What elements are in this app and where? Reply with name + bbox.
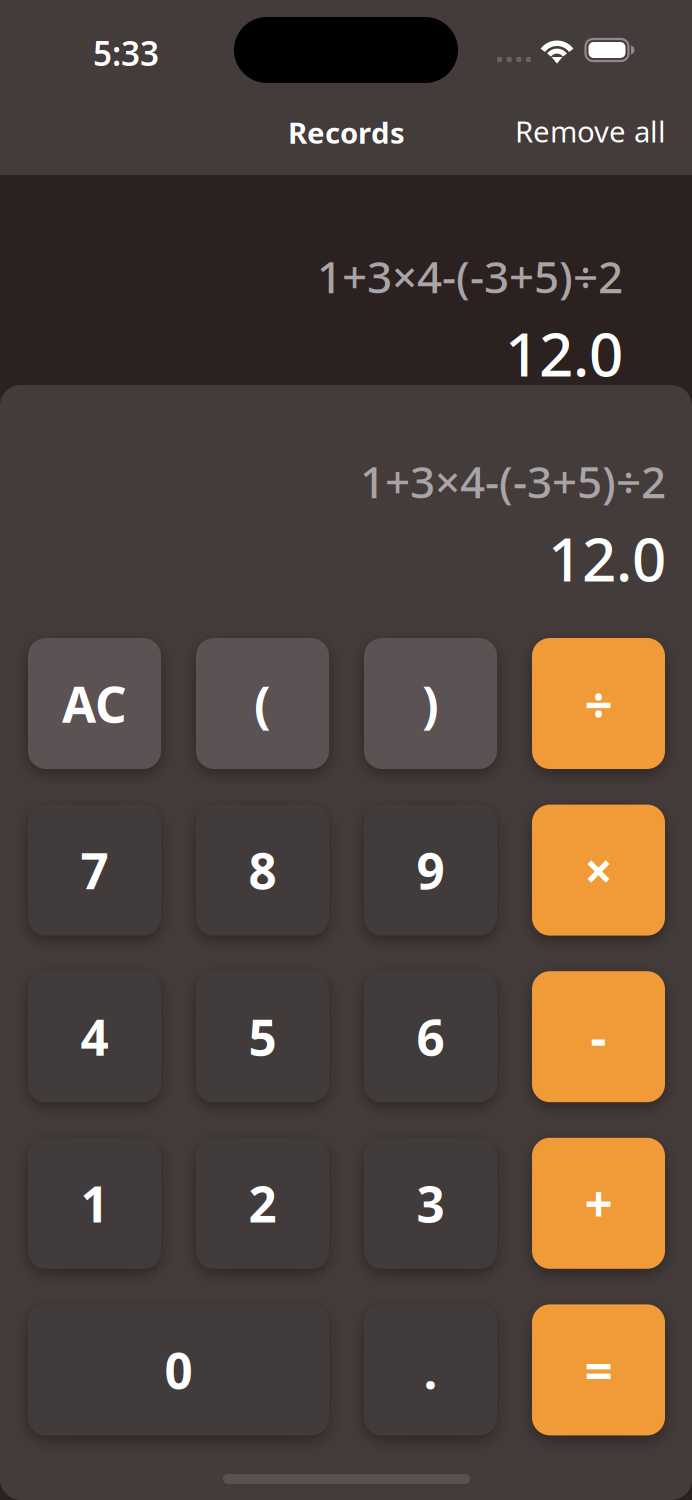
button[interactable]: 8 [196, 805, 329, 936]
staticText: Records [288, 113, 405, 152]
staticText: 0 [164, 1337, 192, 1403]
staticText: × [584, 837, 612, 903]
staticText: 5 [248, 1004, 276, 1069]
staticText: = [584, 1337, 612, 1403]
staticText: 6 [416, 1004, 444, 1069]
staticText: 1 [80, 1170, 108, 1236]
staticText: AC [62, 671, 127, 736]
button[interactable]: AC [28, 638, 161, 769]
button[interactable]: 1+3×4-(-3+5)÷2 [0, 175, 623, 423]
staticText: 9 [416, 837, 444, 903]
button[interactable]: 7 [28, 805, 161, 936]
staticText: 2 [248, 1170, 276, 1236]
staticText: ( [254, 671, 271, 736]
button[interactable]: + [532, 1138, 665, 1269]
button[interactable]: ( [196, 638, 329, 769]
button[interactable]: = [532, 1304, 665, 1435]
staticText: 1+3×4-(-3+5)÷2 [317, 247, 623, 305]
staticText: 1+3×4-(-3+5)÷2 [360, 452, 666, 510]
staticText: - [590, 1004, 606, 1069]
staticText: ) [422, 671, 439, 736]
button[interactable]: ) [364, 638, 497, 769]
staticText: ÷ [584, 671, 612, 736]
staticText: 8 [248, 837, 276, 903]
staticText: 12.0 [505, 313, 623, 393]
button[interactable]: 6 [364, 971, 497, 1102]
staticText: + [584, 1170, 612, 1236]
staticText: Remove all [515, 111, 666, 150]
button[interactable]: 0 [28, 1304, 329, 1435]
staticText: 7 [80, 837, 108, 903]
staticText: 12.0 [548, 518, 666, 598]
button[interactable]: . [364, 1304, 497, 1435]
button[interactable]: 5 [196, 971, 329, 1102]
button[interactable]: - [532, 971, 665, 1102]
staticText: 5:33 [93, 31, 159, 75]
staticText: 4 [80, 1004, 108, 1069]
button[interactable]: 2 [196, 1138, 329, 1269]
button[interactable]: 3 [364, 1138, 497, 1269]
button[interactable]: 4 [28, 971, 161, 1102]
button[interactable]: ÷ [532, 638, 665, 769]
button[interactable]: × [532, 805, 665, 936]
staticText: 3 [416, 1170, 444, 1236]
button[interactable]: 1 [28, 1138, 161, 1269]
button[interactable]: Remove all [476, 109, 666, 153]
button[interactable]: 9 [364, 805, 497, 936]
staticText: . [423, 1337, 437, 1403]
